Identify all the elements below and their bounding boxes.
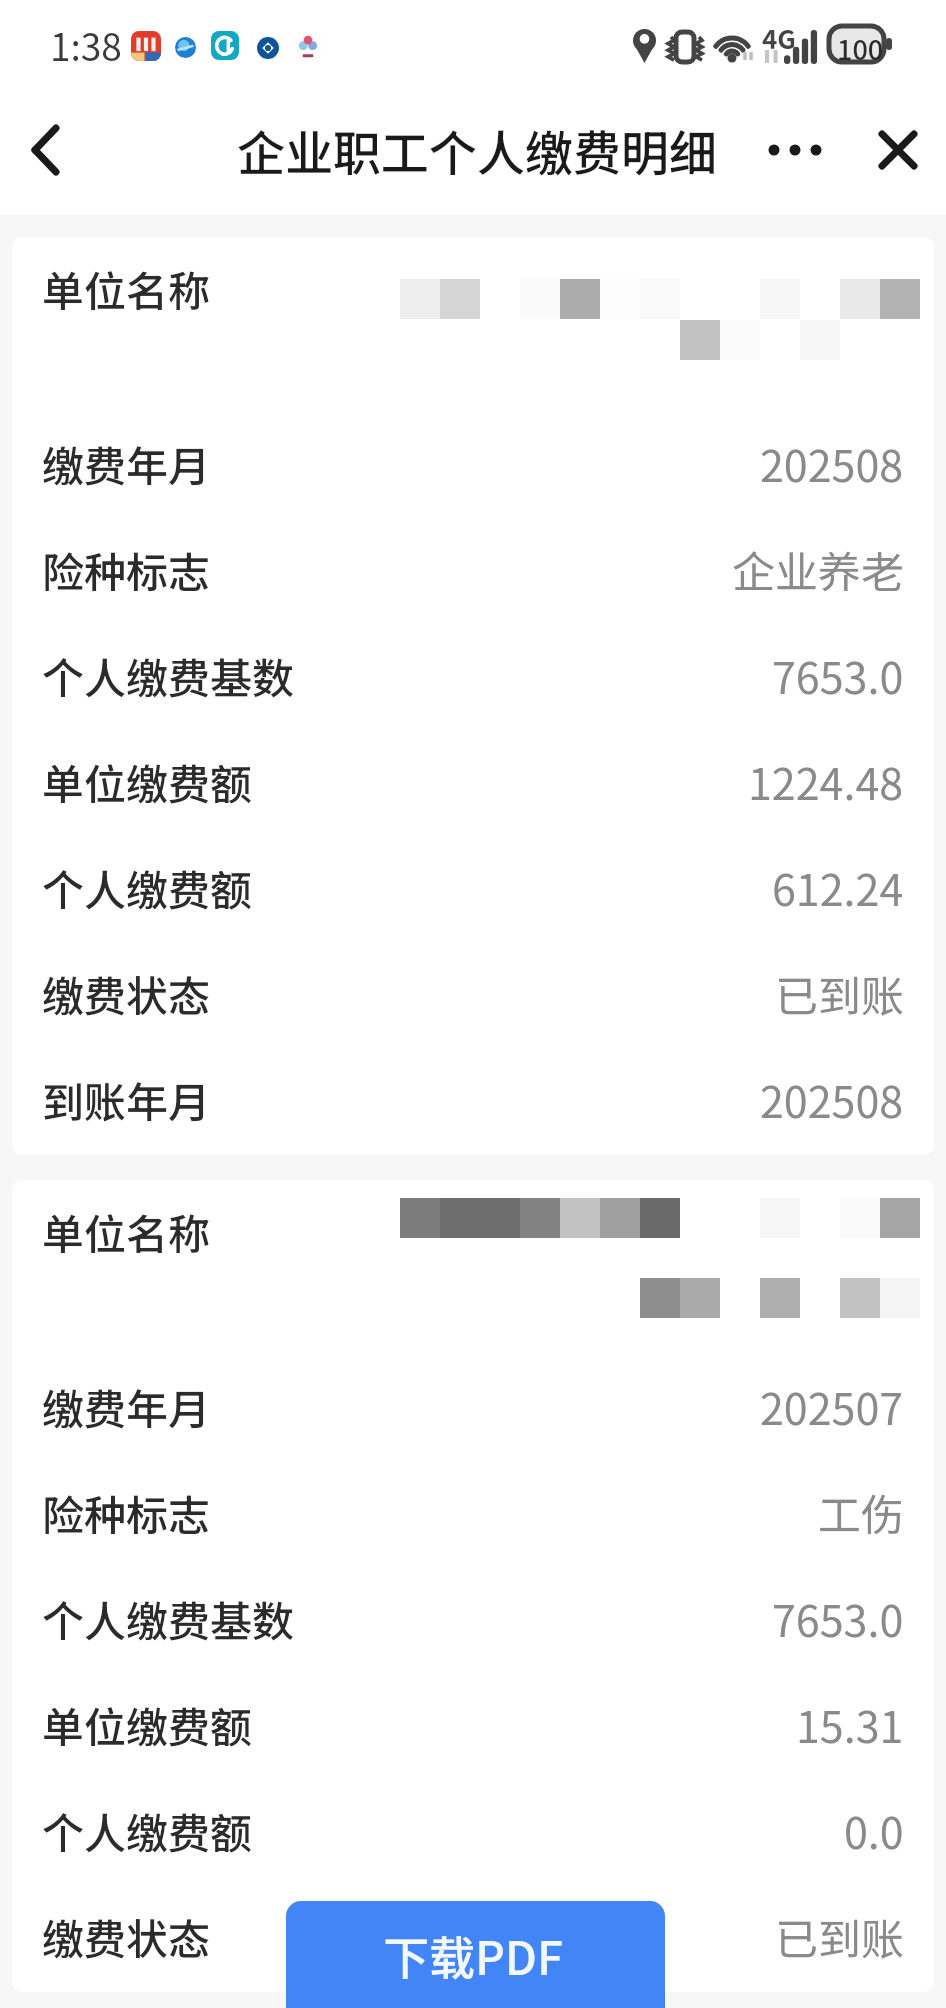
staticText: 202508 (760, 432, 904, 494)
staticText: 0.0 (844, 1799, 904, 1861)
button[interactable]: 到账年月 (12, 1046, 934, 1152)
button[interactable]: 下载PDF (286, 1901, 665, 2008)
staticText: 7653.0 (772, 1587, 904, 1649)
button[interactable]: 关闭 (850, 102, 946, 198)
staticText: 单位名称 (42, 1201, 211, 1262)
staticText: 企业职工个人缴费明细 (237, 115, 718, 185)
staticText: 缴费年月 (42, 433, 211, 494)
staticText: 下载PDF (383, 1922, 563, 1989)
staticText: 险种标志 (42, 1482, 211, 1543)
staticText: 险种标志 (42, 539, 211, 600)
staticText: 15.31 (796, 1693, 904, 1755)
staticText: 单位缴费额 (42, 1694, 253, 1755)
staticText: 已到账 (775, 962, 904, 1024)
staticText: 单位名称 (42, 258, 211, 319)
staticText: 企业养老 (732, 538, 904, 600)
button[interactable]: 个人缴费基数 (12, 1565, 934, 1671)
staticText: 202508 (760, 1068, 904, 1130)
button[interactable]: 返回 (0, 102, 96, 198)
staticText: 个人缴费基数 (42, 645, 295, 706)
button[interactable]: 缴费状态 (12, 1883, 934, 1989)
button[interactable]: 缴费状态 (12, 940, 934, 1046)
button[interactable]: 险种标志 (12, 516, 934, 622)
staticText: 202507 (760, 1375, 904, 1437)
staticText: 7653.0 (772, 644, 904, 706)
staticText: 已到账 (775, 1905, 904, 1967)
staticText: 缴费年月 (42, 1376, 211, 1437)
staticText: 单位缴费额 (42, 751, 253, 812)
staticText: 个人缴费额 (42, 857, 253, 918)
button[interactable]: 单位名称 (12, 1180, 934, 1353)
staticText: 工伤 (818, 1481, 904, 1543)
button[interactable]: 单位名称 (12, 237, 934, 410)
staticText: 缴费状态 (42, 963, 211, 1024)
staticText: 612.24 (772, 856, 904, 918)
staticText: 1224.48 (748, 750, 904, 812)
button[interactable]: 个人缴费基数 (12, 622, 934, 728)
staticText: 1:38 (50, 18, 122, 72)
staticText: 到账年月 (42, 1069, 211, 1130)
staticText: 个人缴费基数 (42, 1588, 295, 1649)
button[interactable]: 单位缴费额 (12, 1671, 934, 1777)
staticText: 缴费状态 (42, 1906, 211, 1967)
button[interactable]: 缴费年月 (12, 410, 934, 516)
button[interactable]: 险种标志 (12, 1459, 934, 1565)
button[interactable]: 个人缴费额 (12, 834, 934, 940)
staticText: 4G (762, 19, 796, 57)
staticText: 100 (837, 29, 884, 68)
button[interactable]: 缴费年月 (12, 1353, 934, 1459)
staticText: 个人缴费额 (42, 1800, 253, 1861)
button[interactable]: 更多 (726, 102, 822, 198)
button[interactable]: 单位缴费额 (12, 728, 934, 834)
button[interactable]: 个人缴费额 (12, 1777, 934, 1883)
